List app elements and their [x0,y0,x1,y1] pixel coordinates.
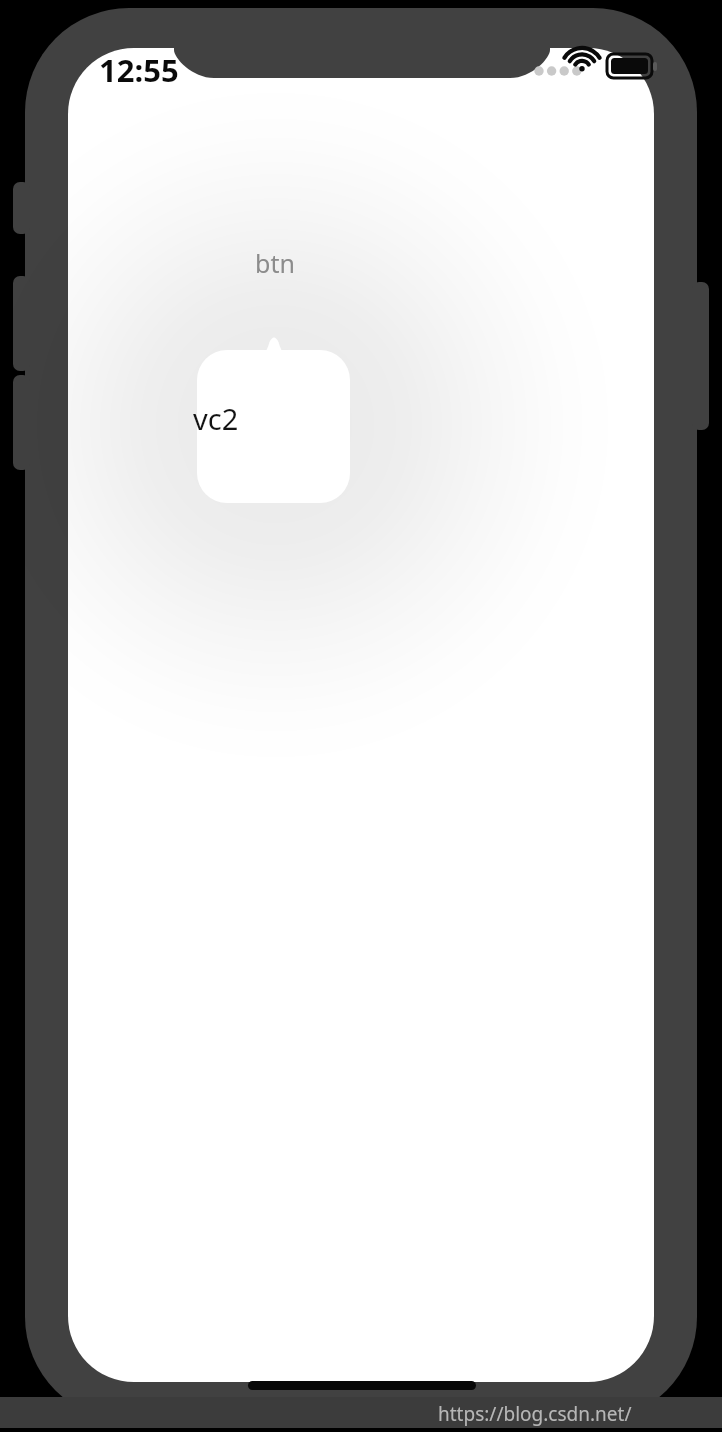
button[interactable]: vc2 popover [197,334,350,503]
button[interactable] [248,242,302,282]
